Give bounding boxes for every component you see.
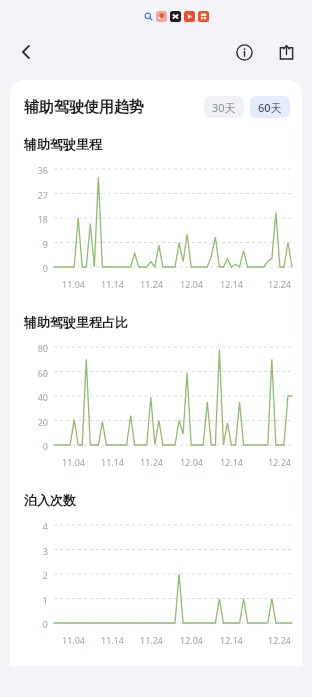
staticText: 0	[42, 440, 48, 450]
staticText: 12.24	[268, 456, 292, 468]
staticText: 2	[42, 569, 48, 579]
staticText: 12.24	[268, 634, 292, 646]
staticText: 3	[42, 545, 48, 555]
staticText: 60天	[258, 100, 282, 115]
staticText: 0	[42, 262, 48, 272]
staticText: 11.14	[101, 634, 125, 646]
staticText: 11.24	[140, 456, 164, 468]
button[interactable]: Share	[270, 36, 302, 68]
staticText: 辅助驾驶使用趋势	[24, 98, 144, 117]
staticText: 27	[37, 189, 48, 199]
staticText: 36	[37, 164, 48, 174]
staticText: 18	[37, 213, 48, 223]
staticText: 11.04	[62, 634, 86, 646]
staticText: 1	[42, 594, 48, 604]
staticText: 12.04	[180, 634, 204, 646]
button[interactable]: 30天	[204, 96, 244, 118]
staticText: 11.14	[101, 456, 125, 468]
staticText: 12.14	[220, 456, 244, 468]
staticText: 11.04	[62, 278, 86, 290]
button[interactable]: Info	[228, 36, 260, 68]
staticText: 12.14	[220, 278, 244, 290]
staticText: 12.04	[180, 456, 204, 468]
staticText: 11.04	[62, 456, 86, 468]
staticText: 40	[37, 391, 48, 401]
staticText: 11.24	[140, 278, 164, 290]
staticText: 30天	[212, 100, 236, 115]
staticText: 0	[42, 618, 48, 628]
button[interactable]: Back	[8, 34, 44, 70]
button[interactable]: 60天	[250, 96, 290, 118]
staticText: 11.24	[140, 634, 164, 646]
staticText: 辅助驾驶里程占比	[24, 314, 128, 330]
staticText: 9	[42, 238, 48, 248]
staticText: 11.14	[101, 278, 125, 290]
staticText: 20	[37, 416, 48, 426]
staticText: 辅助驾驶里程	[24, 136, 102, 152]
staticText: 80	[37, 342, 48, 352]
staticText: 泊入次数	[24, 492, 76, 508]
staticText: 60	[37, 367, 48, 377]
staticText: 12.14	[220, 634, 244, 646]
staticText: 4	[42, 520, 48, 530]
staticText: 12.04	[180, 278, 204, 290]
staticText: 12.24	[268, 278, 292, 290]
